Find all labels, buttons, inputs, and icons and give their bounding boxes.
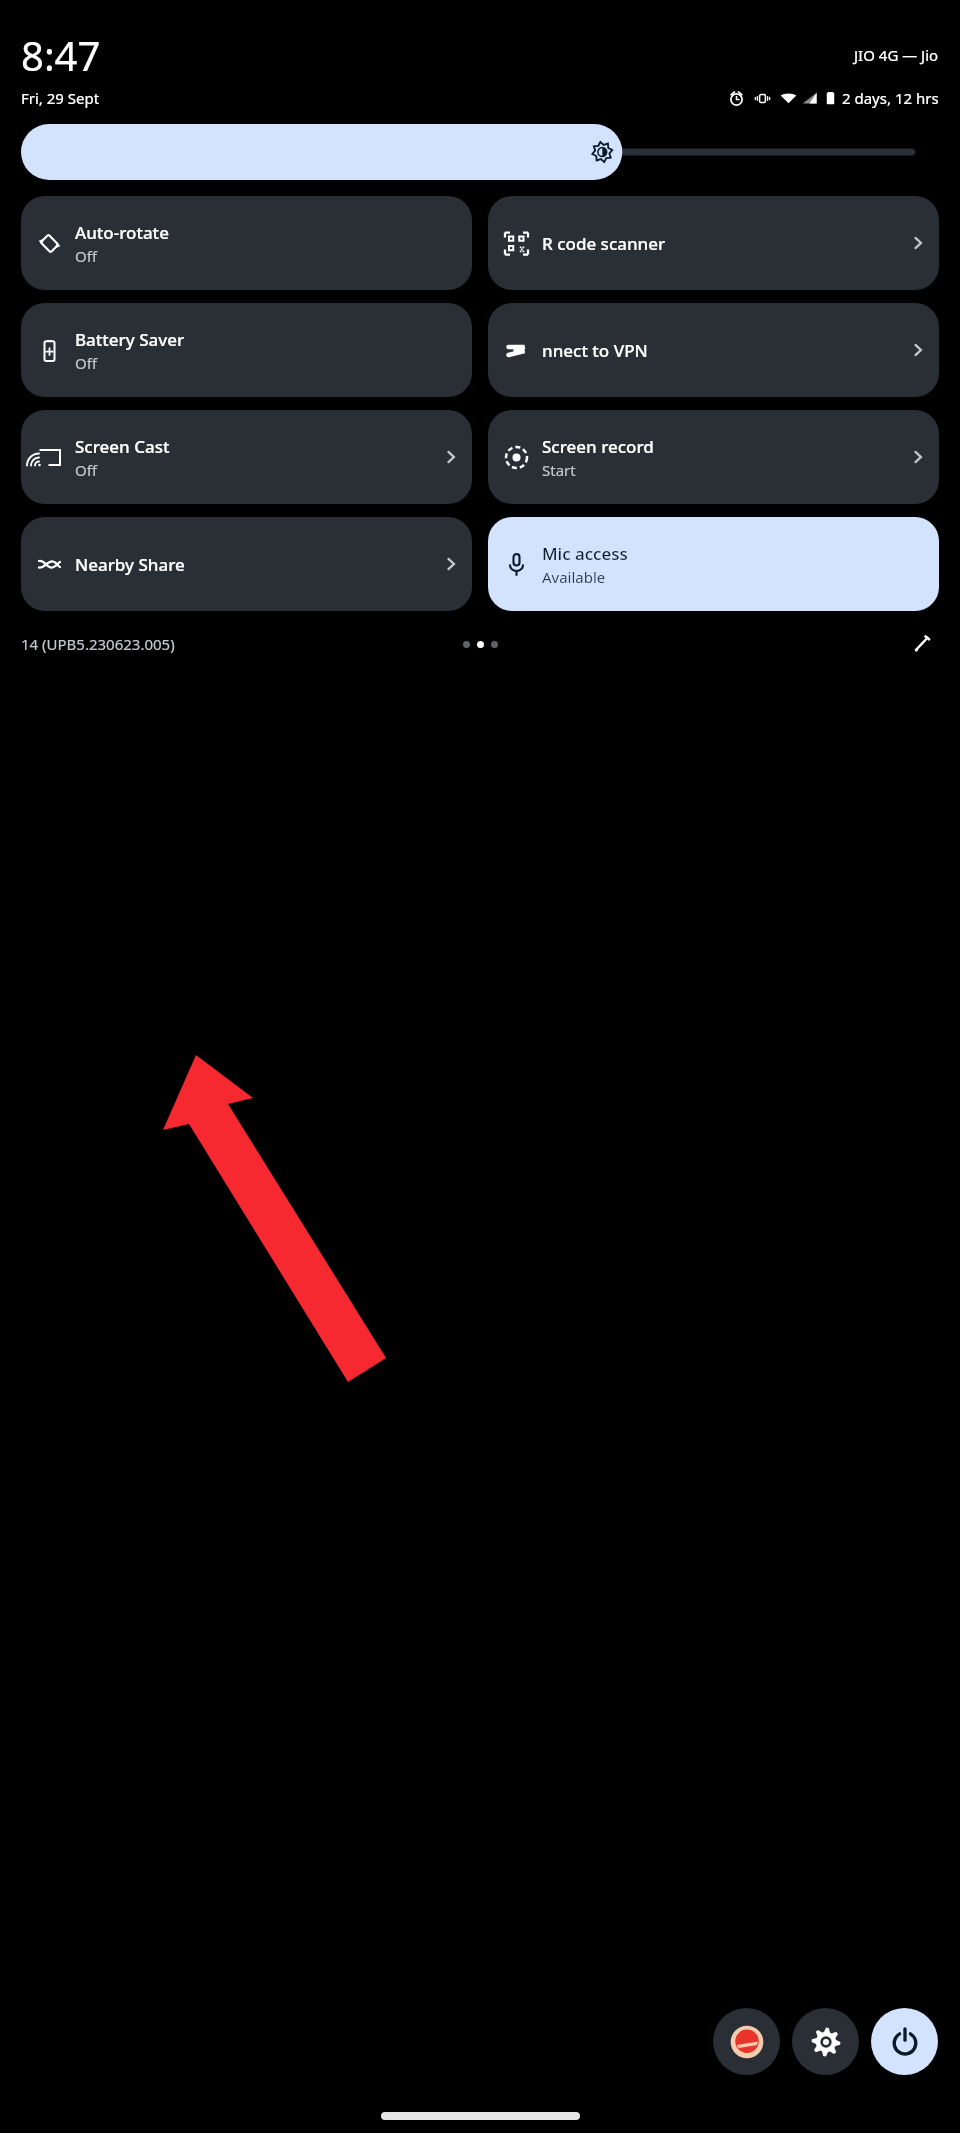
button[interactable]: Edit tiles	[905, 627, 939, 661]
staticText: Off	[75, 246, 98, 266]
button[interactable]: Nearby Share	[21, 517, 472, 611]
button[interactable]: Battery Saver	[21, 303, 472, 397]
button[interactable]: Screen Cast	[21, 410, 472, 504]
staticText: 2 days, 12 hrs	[842, 88, 939, 108]
button[interactable]: User account	[713, 2008, 780, 2075]
staticText: 8:47	[21, 28, 101, 82]
staticText: Fri, 29 Sept	[21, 88, 100, 108]
button[interactable]: Mic access	[488, 517, 939, 611]
staticText: 14 (UPB5.230623.005)	[21, 634, 175, 654]
button[interactable]: Power	[871, 2008, 938, 2075]
staticText: Mic access	[542, 542, 628, 565]
staticText: Off	[75, 460, 98, 480]
button[interactable]: R code scanner	[488, 196, 939, 290]
button[interactable]: Screen record	[488, 410, 939, 504]
staticText: Start	[542, 460, 576, 480]
staticText: Nearby Share	[75, 553, 185, 576]
staticText: Off	[75, 353, 98, 373]
button[interactable]: Brightness	[21, 124, 939, 180]
staticText: R code scanner	[542, 232, 666, 255]
button[interactable]: Auto-rotate	[21, 196, 472, 290]
button[interactable]: nnect to VPN	[488, 303, 939, 397]
staticText: Screen record	[542, 435, 654, 458]
staticText: Available	[542, 567, 606, 587]
staticText: nnect to VPN	[542, 339, 648, 362]
staticText: Auto-rotate	[75, 221, 169, 244]
staticText: Battery Saver	[75, 328, 185, 351]
staticText: Screen Cast	[75, 435, 170, 458]
button[interactable]: Settings	[792, 2008, 859, 2075]
staticText: JIO 4G — Jio	[854, 45, 939, 65]
